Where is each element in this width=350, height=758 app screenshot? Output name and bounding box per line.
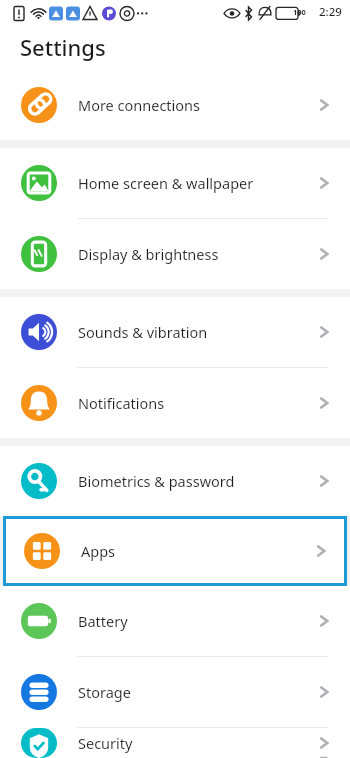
button[interactable]: Storage — [0, 657, 350, 728]
staticText: 2:29 — [319, 4, 342, 20]
button[interactable]: Apps — [3, 516, 347, 586]
staticText: More connections — [78, 95, 316, 115]
button[interactable]: Battery — [0, 586, 350, 657]
button[interactable]: Apps — [3, 516, 347, 586]
staticText: Security — [78, 733, 316, 753]
button[interactable]: Sounds & vibration — [0, 297, 350, 368]
button[interactable]: Biometrics & password — [0, 446, 350, 516]
button[interactable]: Display & brightness — [0, 219, 350, 289]
staticText: Settings — [20, 32, 106, 62]
button[interactable]: Security — [0, 728, 350, 758]
staticText: Storage — [78, 682, 316, 702]
button[interactable]: More connections — [0, 70, 350, 140]
staticText: Display & brightness — [78, 244, 316, 264]
button[interactable]: Notifications — [0, 368, 350, 438]
staticText: Biometrics & password — [78, 471, 316, 491]
staticText: Home screen & wallpaper — [78, 173, 316, 193]
staticText: Sounds & vibration — [78, 322, 316, 342]
staticText: Notifications — [78, 393, 316, 413]
staticText: Apps — [81, 541, 313, 561]
staticText: 100 — [293, 7, 306, 17]
button[interactable]: Home screen & wallpaper — [0, 148, 350, 219]
staticText: Battery — [78, 611, 316, 631]
